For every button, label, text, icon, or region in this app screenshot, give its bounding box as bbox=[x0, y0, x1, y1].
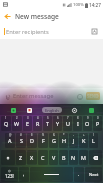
button[interactable]: & bbox=[49, 133, 58, 148]
button[interactable]: Settings bbox=[70, 106, 78, 114]
staticText: Enter message bbox=[13, 92, 75, 100]
staticText: N bbox=[71, 154, 76, 161]
staticText: 7 bbox=[67, 116, 69, 120]
button[interactable]: Sticker bbox=[25, 106, 33, 114]
button[interactable]: More bbox=[87, 106, 95, 114]
staticText: G bbox=[52, 137, 56, 144]
staticText: U bbox=[66, 120, 70, 127]
button[interactable]: Theme bbox=[9, 106, 17, 114]
button[interactable]: Next bbox=[85, 167, 102, 182]
button[interactable]: N bbox=[69, 150, 78, 165]
staticText: 1 bbox=[5, 116, 7, 120]
staticText: - bbox=[73, 133, 74, 137]
staticText: X bbox=[30, 154, 34, 161]
button[interactable]: ( bbox=[89, 133, 98, 148]
button[interactable]: B bbox=[59, 150, 68, 165]
button[interactable]: ☺ bbox=[1, 167, 18, 182]
staticText: R bbox=[36, 120, 40, 127]
button[interactable]: 4 bbox=[33, 116, 42, 131]
staticText: Q bbox=[4, 120, 9, 127]
button[interactable]: Shift bbox=[1, 150, 15, 165]
button[interactable]: 7 bbox=[63, 116, 72, 131]
staticText: A bbox=[8, 137, 12, 144]
button[interactable]: Back bbox=[0, 9, 15, 24]
button[interactable]: 9 bbox=[83, 116, 92, 131]
staticText: 4 bbox=[37, 116, 39, 120]
staticText: ☺ bbox=[8, 170, 11, 173]
button[interactable]: C bbox=[38, 150, 48, 165]
staticText: E bbox=[26, 120, 29, 127]
staticText: B bbox=[62, 154, 66, 161]
staticText: L bbox=[92, 137, 95, 144]
staticText: English bbox=[45, 108, 59, 113]
staticText: S bbox=[20, 137, 23, 144]
button[interactable]: Z bbox=[16, 150, 26, 165]
staticText: 2 bbox=[16, 116, 18, 120]
staticText: Next bbox=[89, 172, 99, 178]
staticText: $ bbox=[31, 133, 33, 137]
staticText: New message bbox=[15, 12, 59, 21]
button[interactable]: 3 bbox=[23, 116, 32, 131]
staticText: 100% bbox=[73, 2, 84, 8]
button[interactable]: . bbox=[74, 167, 84, 182]
staticText: % bbox=[42, 133, 45, 137]
staticText: @ bbox=[9, 133, 12, 137]
staticText: 9 bbox=[87, 116, 89, 120]
button[interactable]: @ bbox=[5, 133, 15, 148]
button[interactable]: V bbox=[49, 150, 58, 165]
button[interactable]: SEND bbox=[86, 92, 100, 100]
staticText: T bbox=[46, 120, 49, 127]
staticText: & bbox=[53, 133, 55, 137]
staticText: 6 bbox=[57, 116, 59, 120]
staticText: C bbox=[41, 154, 45, 161]
staticText: 3 bbox=[27, 116, 29, 120]
staticText: M bbox=[81, 154, 86, 161]
button[interactable]: 1 bbox=[1, 116, 11, 131]
staticText: Z bbox=[19, 154, 23, 161]
button[interactable]: Backspace bbox=[89, 150, 102, 165]
button[interactable]: % bbox=[38, 133, 48, 148]
staticText: Y bbox=[56, 120, 60, 127]
staticText: O bbox=[85, 120, 90, 127]
staticText: K bbox=[82, 137, 86, 144]
staticText: 5 bbox=[47, 116, 49, 120]
staticText: D bbox=[30, 137, 34, 144]
staticText: F bbox=[42, 137, 45, 144]
button[interactable]: 2 bbox=[12, 116, 22, 131]
button[interactable]: English bbox=[42, 107, 62, 113]
staticText: + bbox=[83, 133, 85, 137]
button[interactable]: M bbox=[79, 150, 88, 165]
staticText: Enter recipients bbox=[6, 28, 49, 36]
staticText: V bbox=[52, 154, 56, 161]
button[interactable]: $ bbox=[27, 133, 37, 148]
staticText: 123! bbox=[5, 173, 14, 179]
staticText: 8 bbox=[77, 116, 79, 120]
button[interactable]: X bbox=[27, 150, 37, 165]
staticText: 0 bbox=[97, 116, 99, 120]
staticText: P bbox=[96, 120, 100, 127]
staticText: , bbox=[23, 171, 25, 178]
staticText: . bbox=[78, 171, 80, 178]
button[interactable]: , bbox=[19, 167, 29, 182]
staticText: J bbox=[73, 137, 75, 144]
button[interactable]: 5 bbox=[43, 116, 52, 131]
staticText: H bbox=[62, 137, 66, 144]
staticText: ( bbox=[93, 133, 94, 137]
staticText: 14:27 bbox=[89, 2, 101, 8]
button[interactable]: - bbox=[69, 133, 78, 148]
staticText: W bbox=[14, 120, 20, 127]
staticText: SEND bbox=[87, 93, 99, 99]
button[interactable]: 0 bbox=[93, 116, 102, 131]
button[interactable]: + bbox=[79, 133, 88, 148]
button[interactable]: Space bbox=[30, 167, 73, 182]
button[interactable]: Contacts bbox=[90, 27, 99, 36]
button[interactable]: * bbox=[59, 133, 68, 148]
button[interactable]: # bbox=[16, 133, 26, 148]
button[interactable]: 6 bbox=[53, 116, 62, 131]
button[interactable]: Attach bbox=[3, 92, 12, 101]
button[interactable]: 8 bbox=[73, 116, 82, 131]
staticText: * bbox=[63, 133, 65, 137]
button[interactable]: Emoji bbox=[75, 92, 84, 101]
staticText: I bbox=[77, 120, 79, 127]
staticText: # bbox=[20, 133, 22, 137]
